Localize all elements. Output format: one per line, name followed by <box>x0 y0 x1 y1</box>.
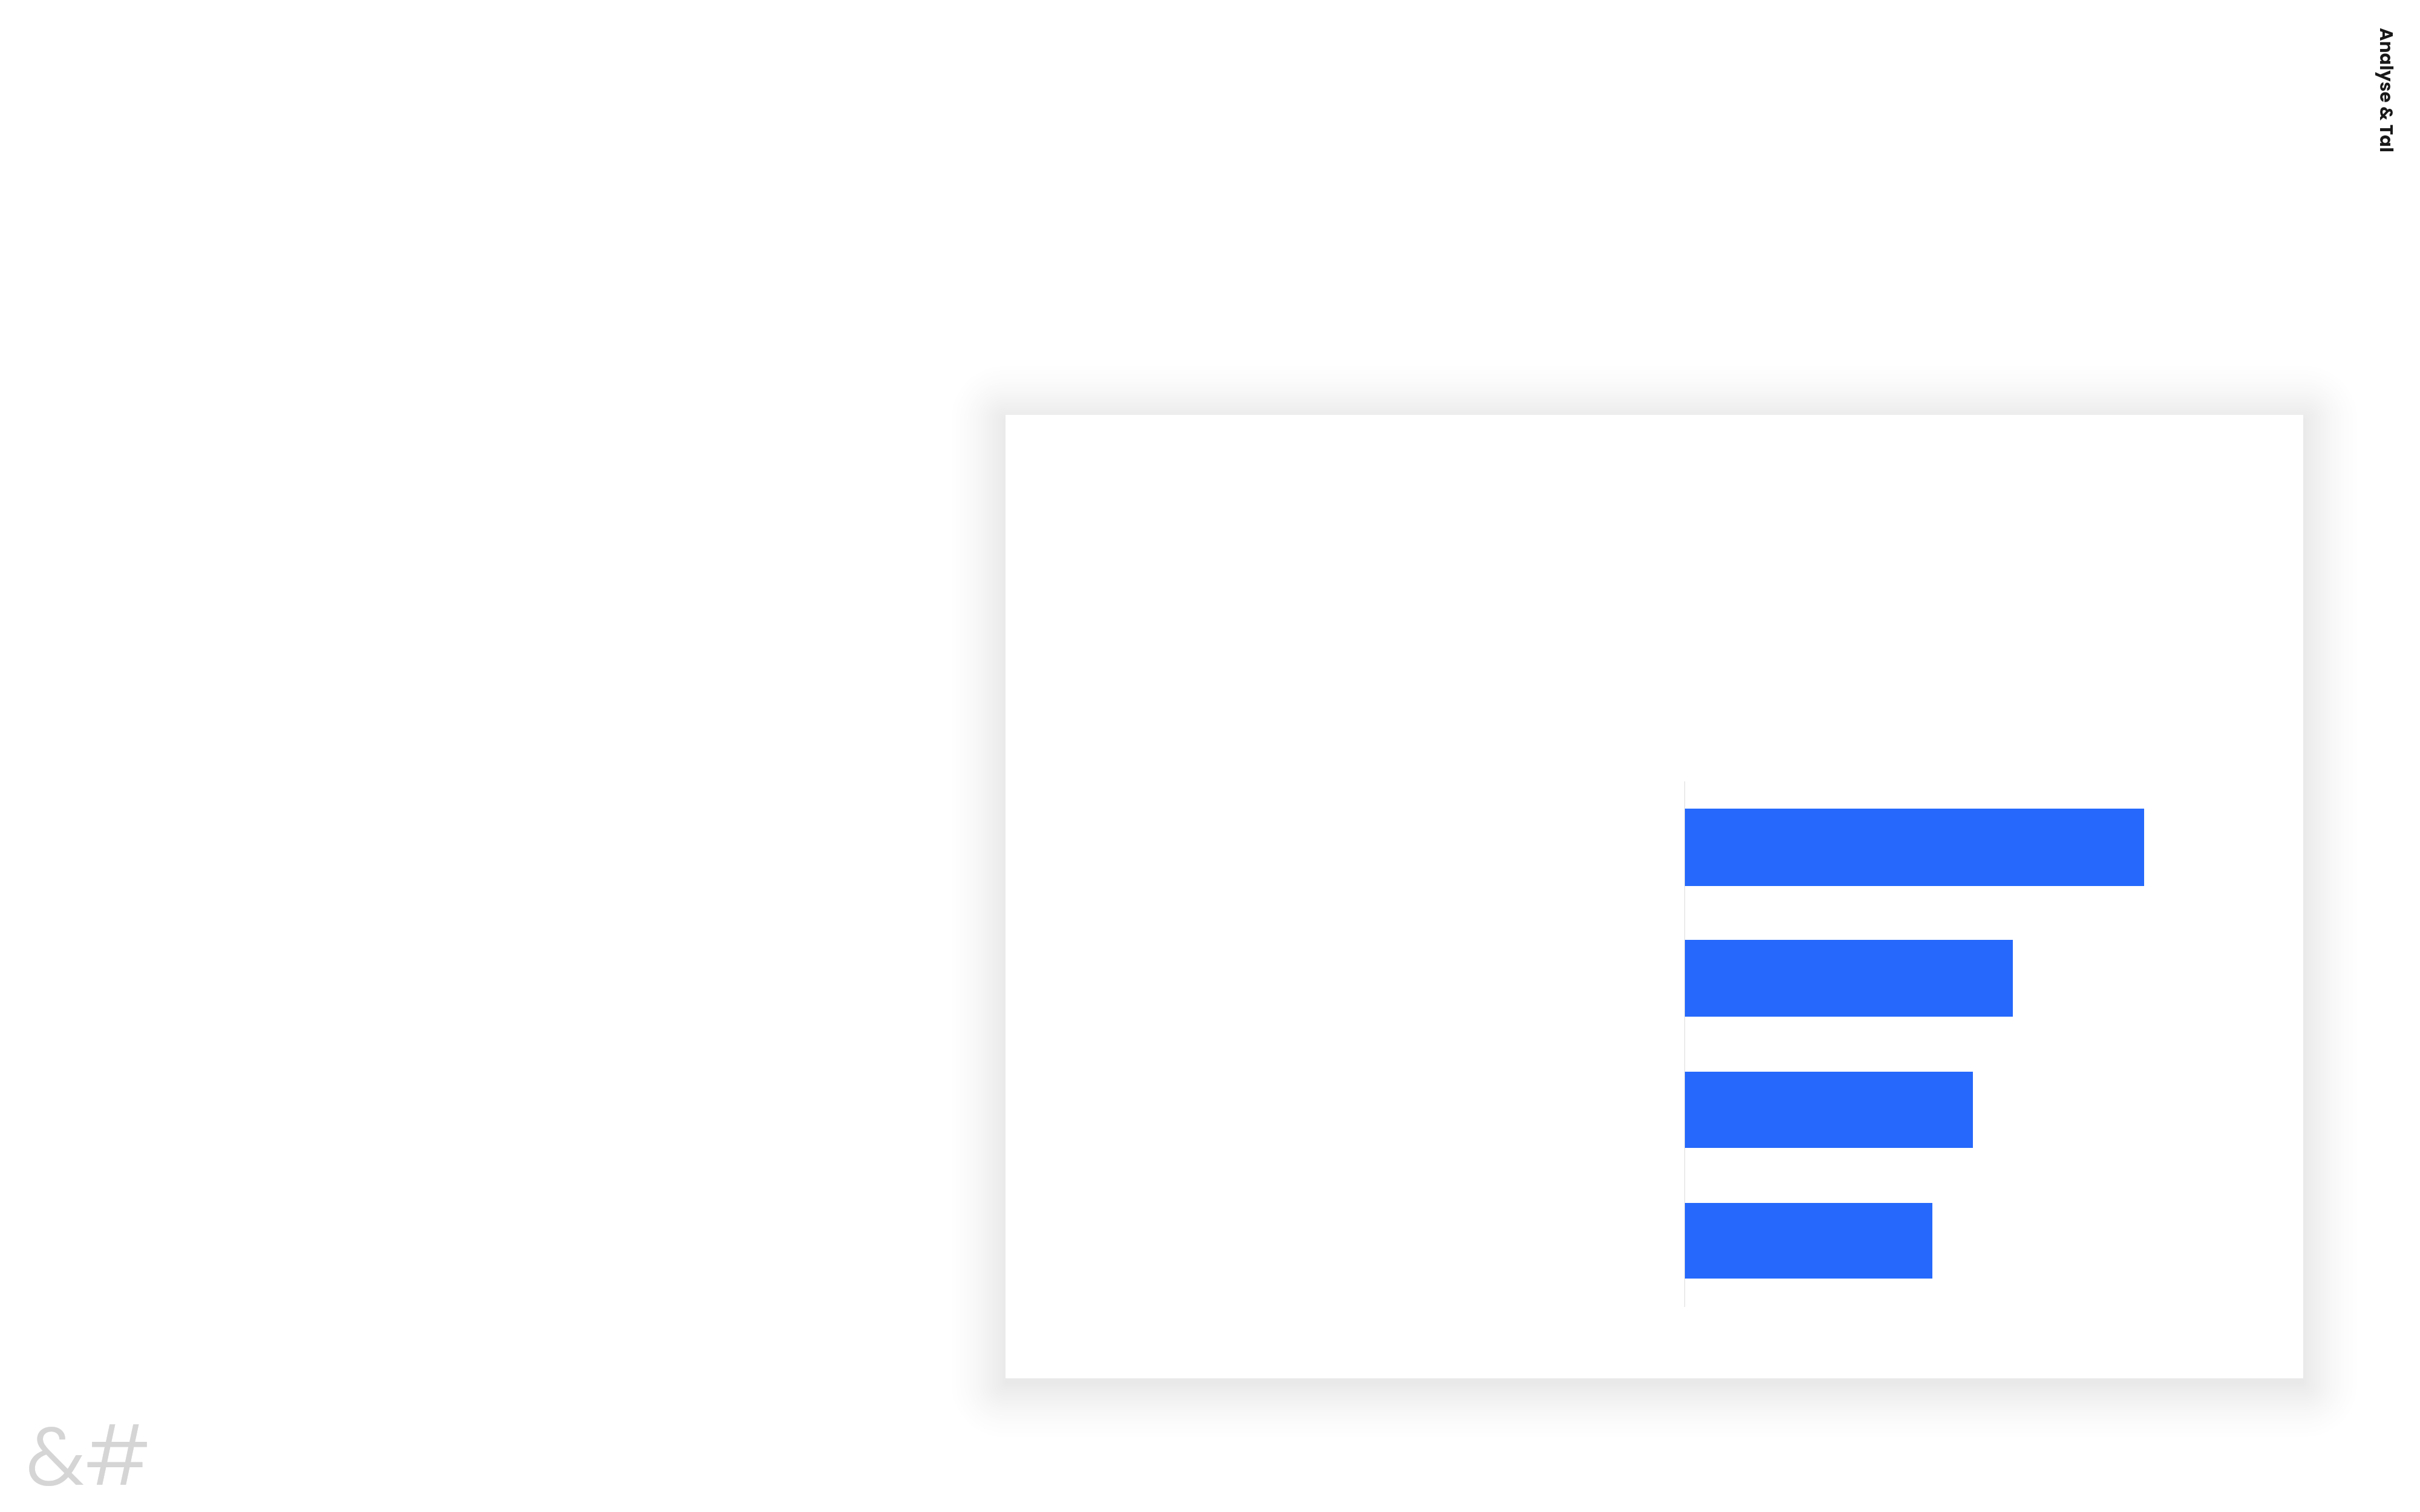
button[interactable]: Analyse & Tal <box>2370 28 2399 185</box>
button[interactable]: Analyse & Tal logo <box>26 1399 183 1512</box>
staticText: Analyse & Tal <box>2374 28 2399 152</box>
staticText: &# <box>26 1399 151 1512</box>
button[interactable]: Series 1 <box>1006 415 2303 1378</box>
